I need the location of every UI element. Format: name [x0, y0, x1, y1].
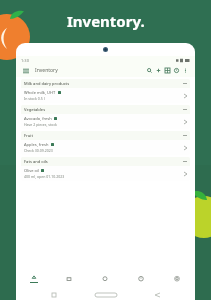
button[interactable]: Recents [49, 290, 59, 300]
button[interactable]: Recipes [87, 269, 123, 289]
staticText: Avocado, fresh [24, 116, 52, 121]
staticText: 400 ml, open 01.10.2023 [24, 174, 65, 179]
button[interactable]: Fruit [21, 131, 190, 155]
button[interactable]: Sort [172, 66, 181, 75]
button[interactable]: Menu [21, 66, 30, 75]
staticText: 1:30 [21, 58, 29, 63]
staticText: Inventory. [67, 11, 145, 31]
staticText: Apples, fresh [24, 142, 49, 147]
staticText: Olive oil [24, 168, 39, 173]
button[interactable]: More options [181, 66, 190, 75]
staticText: Fruit [24, 133, 33, 138]
button[interactable]: Vegetables [21, 105, 190, 129]
button[interactable]: Fats and oils [21, 157, 190, 181]
button[interactable]: Inventory [16, 269, 51, 289]
button[interactable]: Settings [159, 269, 195, 289]
staticText: Milk and dairy products [24, 81, 70, 86]
button[interactable]: Grid view [163, 66, 172, 75]
staticText: In stock 0.5 l [24, 96, 45, 101]
button[interactable]: Statistics [123, 269, 159, 289]
staticText: Fats and oils [24, 159, 48, 164]
button[interactable]: Back [152, 290, 162, 300]
staticText: Whole milk, UHT [24, 90, 56, 95]
button[interactable]: Search [145, 66, 154, 75]
staticText: Inventory [35, 67, 58, 74]
button[interactable]: Shopping list [51, 269, 87, 289]
button[interactable]: Add [154, 66, 163, 75]
staticText: Vegetables [24, 107, 46, 112]
button[interactable]: Home [93, 290, 119, 300]
button[interactable]: Milk and dairy products [21, 79, 190, 103]
staticText: Have 2 pieces, stock [24, 122, 57, 127]
staticText: Check 30.09.2023 [24, 148, 53, 153]
